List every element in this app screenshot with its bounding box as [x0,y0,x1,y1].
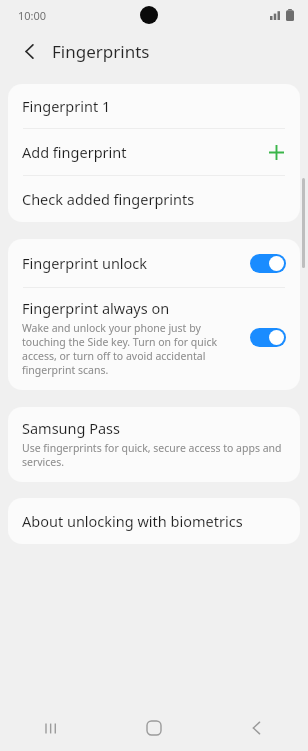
button[interactable]: Fingerprint unlock [8,239,300,287]
button[interactable]: Fingerprint always on [8,288,300,390]
button[interactable]: Home [102,705,205,751]
staticText: Use fingerprints for quick, secure acces… [22,441,286,469]
button[interactable]: About unlocking with biometrics [8,498,300,544]
staticText: Check added fingerprints [22,189,195,209]
button[interactable]: Fingerprint 1 [8,84,300,128]
button[interactable]: Navigate up [14,36,44,66]
button[interactable]: Back [205,705,308,751]
staticText: Fingerprint always on [22,298,170,318]
button[interactable]: On [250,254,286,273]
button[interactable]: Samsung Pass [8,407,300,482]
button[interactable]: Add fingerprint [8,129,300,175]
button[interactable]: On [250,328,286,347]
staticText: Samsung Pass [22,418,121,438]
staticText: Add fingerprint [22,142,127,162]
staticText: Fingerprint unlock [22,253,148,273]
button[interactable]: Recent apps [0,705,102,751]
staticText: Fingerprint 1 [22,96,111,116]
staticText: Wake and unlock your phone just by touch… [22,321,238,377]
staticText: About unlocking with biometrics [22,511,243,531]
staticText: Fingerprints [52,40,150,63]
button[interactable]: Check added fingerprints [8,176,300,222]
staticText: 10:00 [18,8,47,23]
